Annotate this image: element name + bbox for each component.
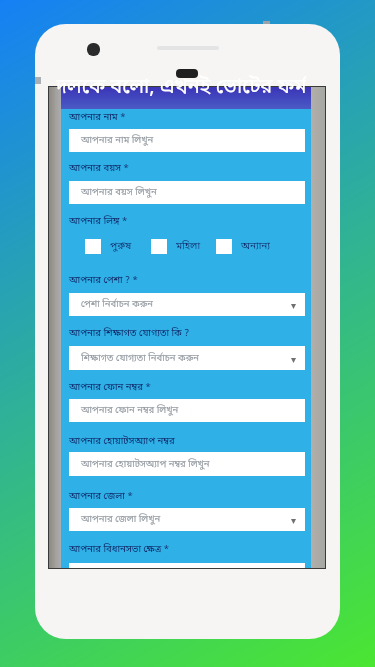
button[interactable]: আপনার ফোন নম্বর লিখুন xyxy=(69,399,305,422)
staticText: আপনার নাম * xyxy=(69,111,126,124)
button[interactable]: পুরুষ xyxy=(85,239,132,254)
button[interactable]: শিক্ষাগত যোগ্যতা নির্বাচন করুন xyxy=(69,346,305,370)
button[interactable]: পেশা নির্বাচন করুন xyxy=(69,293,305,316)
staticText: আপনার শিক্ষাগত যোগ্যতা কি ? xyxy=(69,327,190,340)
staticText: শিক্ষাগত যোগ্যতা নির্বাচন করুন xyxy=(81,352,199,365)
staticText: আপনার বয়স লিখুন xyxy=(81,186,157,199)
staticText: পুরুষ xyxy=(110,240,132,253)
staticText: আপনার পেশা ? * xyxy=(69,274,138,287)
button[interactable]: আপনার বয়স লিখুন xyxy=(69,181,305,204)
staticText: আপনার জেলা * xyxy=(69,490,133,503)
button[interactable]: মহিলা xyxy=(151,239,201,254)
button[interactable]: অন্যান্য xyxy=(216,239,271,254)
staticText: আপনার নাম লিখুন xyxy=(81,134,154,147)
staticText: আপনার জেলা লিখুন xyxy=(81,513,161,526)
staticText: আপনার হোয়াটসঅ্যাপ নম্বর লিখুন xyxy=(81,458,210,471)
staticText: আপনার ফোন নম্বর * xyxy=(69,381,151,394)
staticText: দলকে বলো, এখনই ভোটের ফর্ম xyxy=(56,75,306,97)
button[interactable]: আপনার নাম লিখুন xyxy=(69,129,305,152)
staticText: আপনার লিঙ্গ * xyxy=(69,215,128,228)
staticText: পেশা নির্বাচন করুন xyxy=(81,298,153,311)
staticText: আপনার হোয়াটসঅ্যাপ নম্বর xyxy=(69,435,175,448)
button[interactable]: আপনার জেলা লিখুন xyxy=(69,508,305,531)
button[interactable]: আপনার হোয়াটসঅ্যাপ নম্বর লিখুন xyxy=(69,452,305,476)
staticText: আপনার ফোন নম্বর লিখুন xyxy=(81,404,179,417)
staticText: মহিলা xyxy=(176,240,201,253)
staticText: আপনার বিধানসভা ক্ষেত্র * xyxy=(69,543,169,556)
button[interactable]: দলকে বলো, এখনই ভোটের ফর্ম xyxy=(61,87,311,109)
staticText: আপনার বয়স * xyxy=(69,162,129,175)
staticText: অন্যান্য xyxy=(241,240,271,253)
